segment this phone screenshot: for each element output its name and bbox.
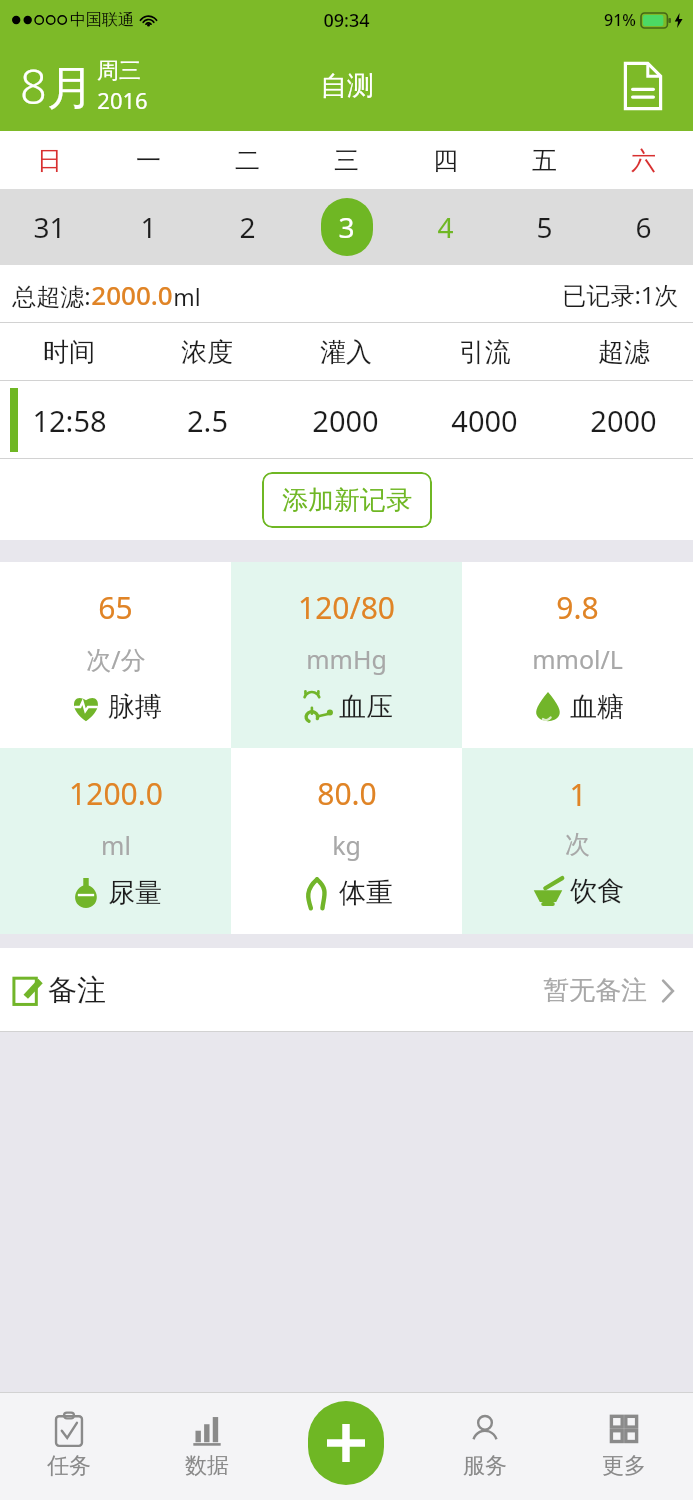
button[interactable]: 1 [462, 748, 693, 934]
staticText: 尿量 [108, 876, 162, 910]
staticText: 数据 [185, 1452, 229, 1480]
staticText: 3 [338, 208, 355, 246]
staticText: 血糖 [570, 690, 624, 724]
staticText: 1 [140, 208, 157, 246]
staticText: 次 [565, 829, 590, 860]
staticText: 2016 [97, 85, 148, 115]
staticText: 12:58 [32, 401, 107, 440]
staticText: 总超滤: [12, 279, 91, 312]
button[interactable]: 31 [0, 189, 99, 265]
staticText: 饮食 [570, 874, 624, 908]
button[interactable]: 65 [0, 562, 231, 748]
staticText: 1200.0 [69, 773, 163, 814]
button[interactable]: 4 [396, 189, 495, 265]
staticText: 超滤 [598, 336, 650, 369]
staticText: 1 [569, 774, 587, 815]
staticText: 暂无备注 [543, 974, 647, 1007]
staticText: 中国联通 [70, 10, 134, 30]
staticText: 120/80 [298, 587, 395, 628]
staticText: kg [332, 828, 361, 862]
button[interactable]: 备注 [0, 948, 693, 1032]
button[interactable]: 服务 [415, 1392, 554, 1500]
staticText: 灌入 [320, 336, 372, 369]
staticText: mmHg [306, 642, 387, 676]
staticText: 65 [98, 587, 133, 628]
button[interactable]: 3 [297, 189, 396, 265]
button[interactable]: 12:58 [0, 381, 693, 459]
staticText: 4000 [451, 401, 518, 440]
button[interactable]: Add [276, 1392, 415, 1500]
staticText: 任务 [47, 1452, 91, 1480]
staticText: 91% [604, 9, 636, 31]
staticText: 自测 [320, 69, 374, 103]
staticText: 二 [235, 145, 260, 176]
staticText: ml [101, 828, 131, 862]
button[interactable]: 120/80 [231, 562, 462, 748]
staticText: 09:34 [323, 8, 370, 33]
button[interactable]: 1200.0 [0, 748, 231, 934]
button[interactable]: 1 [99, 189, 198, 265]
staticText: 已记录:1次 [562, 278, 679, 311]
staticText: 80.0 [317, 773, 377, 814]
staticText: 备注 [48, 972, 106, 1009]
staticText: 浓度 [181, 336, 233, 369]
staticText: 2000 [312, 401, 379, 440]
staticText: ml [173, 281, 201, 312]
staticText: 一 [136, 145, 161, 176]
button[interactable]: 80.0 [231, 748, 462, 934]
button[interactable]: 任务 [0, 1392, 138, 1500]
staticText: 时间 [43, 336, 95, 369]
button[interactable]: Report [617, 60, 669, 112]
staticText: 添加新记录 [282, 484, 412, 517]
button[interactable]: 5 [495, 189, 594, 265]
staticText: 血压 [339, 690, 393, 724]
staticText: 31 [33, 208, 66, 246]
staticText: 服务 [463, 1452, 507, 1480]
staticText: 周三 [97, 57, 141, 85]
button[interactable]: 更多 [554, 1392, 693, 1500]
button[interactable]: 数据 [138, 1392, 276, 1500]
staticText: 五 [532, 145, 557, 176]
staticText: mmol/L [532, 642, 623, 676]
button[interactable]: 2 [198, 189, 297, 265]
staticText: 六 [631, 145, 656, 176]
staticText: 脉搏 [108, 690, 162, 724]
staticText: 2 [239, 208, 256, 246]
button[interactable]: 8月 [20, 54, 148, 118]
staticText: 6 [635, 208, 652, 246]
staticText: 9.8 [556, 587, 599, 628]
staticText: 三 [334, 145, 359, 176]
staticText: 四 [433, 145, 458, 176]
staticText: 体重 [339, 876, 393, 910]
staticText: 2000 [590, 401, 657, 440]
staticText: 8月 [20, 54, 94, 118]
staticText: 引流 [459, 336, 511, 369]
staticText: 日 [37, 145, 62, 176]
button[interactable]: 添加新记录 [262, 472, 432, 528]
staticText: 5 [536, 208, 553, 246]
staticText: 次/分 [86, 642, 146, 676]
staticText: 更多 [602, 1452, 646, 1480]
button[interactable]: 6 [594, 189, 693, 265]
button[interactable]: 9.8 [462, 562, 693, 748]
staticText: 2.5 [187, 401, 228, 440]
staticText: 2000.0 [91, 277, 173, 312]
staticText: 4 [437, 208, 454, 246]
